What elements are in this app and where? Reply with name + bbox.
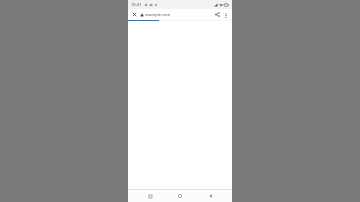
button[interactable]: Back <box>202 190 218 202</box>
button[interactable]: More options <box>222 11 230 19</box>
staticText: 10:41 <box>131 2 142 7</box>
button[interactable]: Close <box>130 10 139 19</box>
button[interactable]: example.com <box>140 9 212 20</box>
button[interactable]: Home <box>172 190 188 202</box>
button[interactable]: Share <box>213 10 222 19</box>
staticText: example.com <box>145 12 171 17</box>
button[interactable]: Recent apps <box>142 190 158 202</box>
